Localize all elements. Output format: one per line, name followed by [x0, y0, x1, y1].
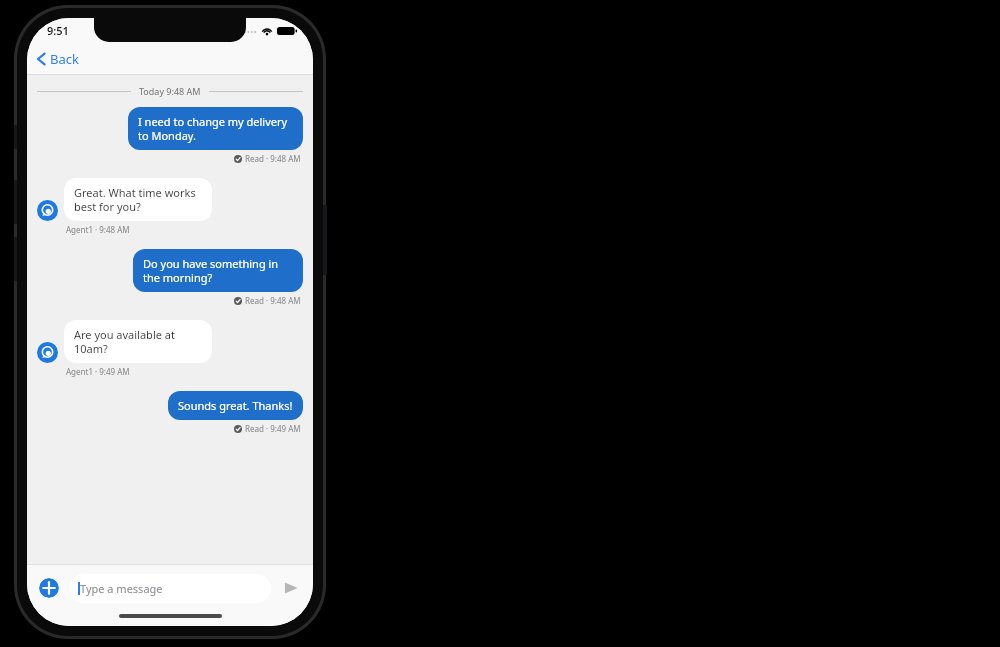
- staticText: Are you available at 10am?: [74, 327, 202, 356]
- button[interactable]: Sounds great. Thanks!: [168, 391, 303, 420]
- staticText: Sounds great. Thanks!: [178, 398, 293, 413]
- staticText: Do you have something in the morning?: [143, 256, 293, 285]
- staticText: Today 9:48 AM: [139, 85, 201, 97]
- button[interactable]: Are you available at 10am?: [64, 320, 212, 363]
- staticText: Agent1 · 9:49 AM: [66, 366, 130, 377]
- button[interactable]: Send: [279, 576, 303, 600]
- button[interactable]: Type a message: [69, 574, 271, 603]
- other: Agent avatar: [37, 200, 58, 221]
- button[interactable]: Do you have something in the morning?: [133, 249, 303, 292]
- button[interactable]: Add attachment: [39, 578, 59, 598]
- staticText: Back: [50, 50, 79, 68]
- button[interactable]: Great. What time works best for you?: [64, 178, 212, 221]
- staticText: I need to change my delivery to Monday.: [138, 114, 293, 143]
- staticText: Read · 9:48 AM: [245, 153, 301, 164]
- staticText: Agent1 · 9:48 AM: [66, 224, 130, 235]
- staticText: 9:51: [47, 23, 69, 38]
- button[interactable]: I need to change my delivery to Monday.: [128, 107, 303, 150]
- staticText: Read · 9:49 AM: [245, 423, 301, 434]
- staticText: Great. What time works best for you?: [74, 185, 202, 214]
- button[interactable]: Back: [32, 47, 83, 71]
- staticText: Type a message: [80, 581, 163, 596]
- staticText: Read · 9:48 AM: [245, 295, 301, 306]
- other: Agent avatar: [37, 342, 58, 363]
